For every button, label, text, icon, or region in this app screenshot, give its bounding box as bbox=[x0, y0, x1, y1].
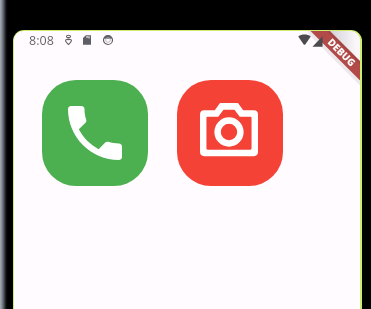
button[interactable]: Camera bbox=[177, 80, 283, 186]
staticText: 8:08 bbox=[29, 32, 54, 49]
button[interactable]: Phone bbox=[42, 80, 148, 186]
staticText: DEBUG bbox=[326, 36, 359, 69]
